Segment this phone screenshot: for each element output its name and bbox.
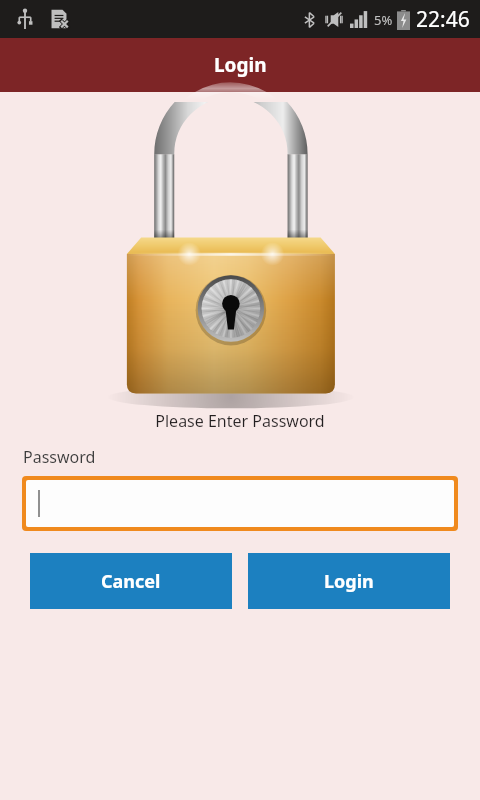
- staticText: Login: [324, 569, 374, 594]
- staticText: 5%: [374, 11, 393, 29]
- button[interactable]: [26, 480, 454, 527]
- staticText: Login: [214, 52, 267, 78]
- staticText: Password: [23, 446, 96, 468]
- staticText: Cancel: [101, 569, 161, 594]
- staticText: Please Enter Password: [155, 410, 325, 432]
- button[interactable]: Cancel: [30, 553, 232, 609]
- staticText: 22:46: [416, 5, 470, 34]
- button[interactable]: Login: [248, 553, 450, 609]
